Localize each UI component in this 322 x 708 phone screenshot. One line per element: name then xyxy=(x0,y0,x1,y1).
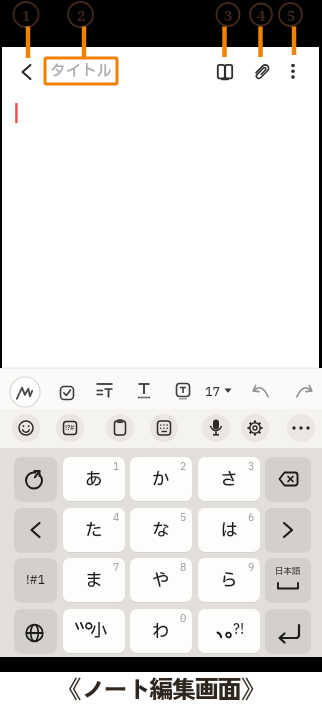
button[interactable] xyxy=(287,414,315,442)
button[interactable] xyxy=(10,58,42,86)
button[interactable]: な xyxy=(130,508,192,552)
staticText: 4 xyxy=(113,510,120,525)
button[interactable] xyxy=(290,380,316,406)
staticText: た xyxy=(85,517,103,543)
staticText: 7 xyxy=(113,560,120,575)
button[interactable]: さ xyxy=(198,457,260,501)
button[interactable] xyxy=(170,380,196,406)
button[interactable]: !#1 xyxy=(14,558,57,602)
button[interactable] xyxy=(14,508,57,552)
button[interactable] xyxy=(14,609,57,653)
staticText: 0 xyxy=(180,611,187,626)
staticText: ま xyxy=(85,567,103,593)
button[interactable] xyxy=(284,60,302,82)
button[interactable] xyxy=(241,414,269,442)
staticText: は xyxy=(220,517,238,543)
staticText: 2 xyxy=(77,5,86,25)
staticText: 8 xyxy=(180,560,187,575)
button[interactable] xyxy=(265,457,311,501)
staticText: 9 xyxy=(248,560,255,575)
button[interactable] xyxy=(265,609,311,653)
button[interactable] xyxy=(202,414,230,442)
button[interactable]: わ xyxy=(130,609,192,653)
staticText: タイトル xyxy=(50,60,113,83)
staticText: か xyxy=(152,466,170,492)
staticText: 1 xyxy=(113,459,120,474)
button[interactable]: ら xyxy=(198,558,260,602)
staticText: 《ノート編集画面》 xyxy=(58,670,264,702)
staticText: 日本語 xyxy=(275,565,301,578)
button[interactable]: 日本語 xyxy=(265,558,311,602)
staticText: 6 xyxy=(248,510,255,525)
button[interactable] xyxy=(54,380,80,406)
staticText: 5 xyxy=(180,510,187,525)
staticText: さ xyxy=(220,466,238,492)
staticText: ?! xyxy=(233,620,245,640)
button[interactable]: 小 xyxy=(63,609,125,653)
staticText: 小 xyxy=(90,618,108,644)
button[interactable]: ま xyxy=(63,558,125,602)
button[interactable]: た xyxy=(63,508,125,552)
staticText: 4 xyxy=(257,5,266,25)
staticText: ら xyxy=(220,567,238,593)
staticText: !#1 xyxy=(26,572,46,589)
staticText: 3 xyxy=(248,459,255,474)
button[interactable]: ?! xyxy=(198,609,260,653)
staticText: わ xyxy=(152,618,170,644)
button[interactable] xyxy=(12,414,40,442)
button[interactable] xyxy=(203,380,235,406)
button[interactable] xyxy=(214,60,236,82)
staticText: 1 xyxy=(22,5,31,25)
button[interactable] xyxy=(150,414,178,442)
staticText: 2 xyxy=(180,459,187,474)
staticText: 3 xyxy=(224,5,233,25)
button[interactable]: あ xyxy=(63,457,125,501)
staticText: 17 xyxy=(205,383,221,397)
button[interactable] xyxy=(92,380,118,406)
staticText: !?# xyxy=(65,424,75,433)
button[interactable] xyxy=(251,60,273,82)
button[interactable] xyxy=(56,414,84,442)
button[interactable] xyxy=(131,380,157,406)
button[interactable] xyxy=(14,457,57,501)
staticText: あ xyxy=(85,466,103,492)
button[interactable] xyxy=(106,414,134,442)
staticText: や xyxy=(152,567,170,593)
button[interactable] xyxy=(10,377,40,407)
staticText: な xyxy=(152,517,170,543)
button[interactable] xyxy=(247,380,273,406)
staticText: 5 xyxy=(287,5,296,25)
button[interactable]: か xyxy=(130,457,192,501)
button[interactable]: や xyxy=(130,558,192,602)
button[interactable] xyxy=(265,508,311,552)
button[interactable]: は xyxy=(198,508,260,552)
